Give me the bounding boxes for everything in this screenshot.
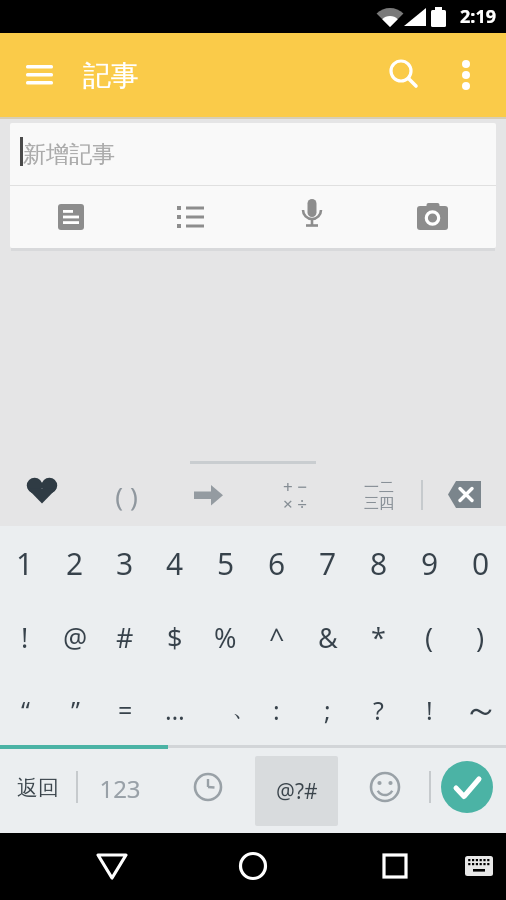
button[interactable] bbox=[84, 838, 140, 894]
button[interactable]: & bbox=[302, 600, 353, 674]
button[interactable] bbox=[382, 53, 426, 97]
staticText: ” bbox=[71, 693, 80, 727]
staticText: 4 bbox=[166, 543, 184, 584]
staticText: @?# bbox=[276, 777, 318, 806]
staticText: ) bbox=[476, 619, 485, 656]
staticText: 返回 bbox=[17, 775, 59, 801]
staticText: : bbox=[273, 693, 280, 727]
button[interactable] bbox=[448, 53, 486, 97]
button[interactable] bbox=[437, 467, 493, 523]
staticText: 8 bbox=[370, 543, 388, 584]
staticText: 2 bbox=[66, 543, 84, 584]
button[interactable]: 0 bbox=[455, 526, 506, 600]
button[interactable]: ) bbox=[455, 600, 506, 674]
staticText: “ bbox=[21, 693, 30, 727]
button[interactable]: # bbox=[100, 600, 150, 674]
button[interactable]: * bbox=[353, 600, 404, 674]
staticText: ^ bbox=[269, 619, 285, 656]
button[interactable]: ; bbox=[302, 674, 353, 745]
button[interactable] bbox=[41, 187, 101, 247]
button[interactable]: ! bbox=[0, 600, 50, 674]
button[interactable]: : bbox=[251, 674, 302, 745]
staticText: ( bbox=[425, 619, 434, 656]
button[interactable]: ! bbox=[404, 674, 455, 745]
button[interactable]: ? bbox=[353, 674, 404, 745]
button[interactable]: ^ bbox=[251, 600, 302, 674]
staticText: 、 bbox=[232, 692, 257, 723]
staticText: ! bbox=[426, 693, 433, 727]
button[interactable]: … bbox=[150, 674, 200, 745]
button[interactable]: $ bbox=[150, 600, 200, 674]
button[interactable] bbox=[460, 848, 498, 884]
staticText: & bbox=[318, 619, 338, 656]
button[interactable]: 9 bbox=[404, 526, 455, 600]
button[interactable]: ( bbox=[404, 600, 455, 674]
button[interactable] bbox=[225, 838, 281, 894]
staticText: 9 bbox=[421, 543, 439, 584]
staticText: 記事 bbox=[83, 58, 139, 93]
button[interactable]: 6 bbox=[251, 526, 302, 600]
button[interactable] bbox=[367, 838, 423, 894]
button[interactable]: = bbox=[100, 674, 150, 745]
staticText: + − × ÷ bbox=[283, 475, 307, 515]
staticText: 一二 三四 bbox=[364, 478, 394, 512]
button[interactable] bbox=[160, 187, 220, 247]
button[interactable] bbox=[282, 187, 342, 247]
button[interactable]: + − × ÷ bbox=[267, 465, 323, 525]
button[interactable] bbox=[14, 462, 70, 518]
button[interactable] bbox=[180, 759, 236, 815]
button[interactable]: 2 bbox=[50, 526, 100, 600]
button[interactable] bbox=[441, 761, 493, 813]
staticText: % bbox=[214, 619, 237, 656]
staticText: = bbox=[118, 693, 133, 727]
staticText: ( ) bbox=[115, 478, 138, 513]
staticText: ! bbox=[21, 619, 29, 656]
button[interactable]: 、 bbox=[200, 674, 251, 745]
button[interactable] bbox=[10, 123, 496, 248]
staticText: … bbox=[165, 693, 185, 727]
button[interactable]: 1 bbox=[0, 526, 50, 600]
button[interactable] bbox=[183, 467, 239, 523]
button[interactable]: 5 bbox=[200, 526, 251, 600]
staticText: @ bbox=[63, 619, 88, 656]
button[interactable]: “ bbox=[0, 674, 50, 745]
staticText: 6 bbox=[268, 543, 286, 584]
button[interactable] bbox=[357, 759, 413, 815]
staticText: $ bbox=[167, 619, 183, 656]
staticText: ～ bbox=[463, 687, 499, 732]
button[interactable] bbox=[20, 57, 58, 93]
staticText: 123 bbox=[99, 772, 141, 805]
button[interactable]: 返回 bbox=[8, 757, 68, 819]
staticText: 7 bbox=[319, 543, 337, 584]
button[interactable]: % bbox=[200, 600, 251, 674]
button[interactable]: 3 bbox=[100, 526, 150, 600]
staticText: 1 bbox=[16, 543, 34, 584]
button[interactable]: @ bbox=[50, 600, 100, 674]
staticText: ? bbox=[373, 693, 384, 727]
button[interactable]: 一二 三四 bbox=[351, 465, 407, 525]
button[interactable]: ～ bbox=[455, 674, 506, 745]
staticText: # bbox=[116, 619, 134, 656]
staticText: * bbox=[371, 619, 386, 656]
button[interactable]: ” bbox=[50, 674, 100, 745]
button[interactable]: ( ) bbox=[98, 467, 154, 523]
button[interactable]: @?# bbox=[255, 756, 338, 826]
button[interactable]: 7 bbox=[302, 526, 353, 600]
button[interactable]: 8 bbox=[353, 526, 404, 600]
button[interactable] bbox=[402, 187, 462, 247]
staticText: 新增記事 bbox=[23, 140, 115, 169]
button[interactable]: 4 bbox=[150, 526, 200, 600]
staticText: 3 bbox=[116, 543, 134, 584]
staticText: ; bbox=[324, 693, 331, 727]
staticText: 5 bbox=[217, 543, 235, 584]
staticText: 0 bbox=[472, 543, 490, 584]
button[interactable]: 123 bbox=[90, 757, 150, 819]
staticText: 2:19 bbox=[460, 4, 496, 29]
